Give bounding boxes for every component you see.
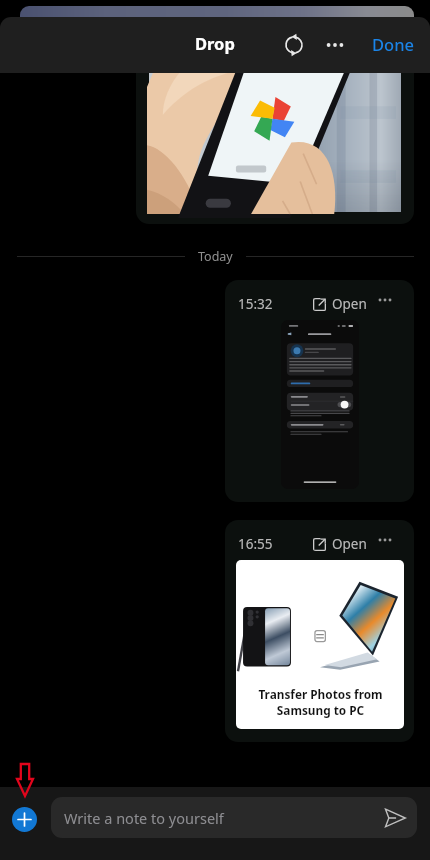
button[interactable]: Open — [311, 293, 369, 315]
button[interactable]: 16:55 — [225, 520, 414, 742]
button[interactable]: More — [374, 529, 396, 551]
staticText: Write a note to yourself — [64, 808, 224, 828]
button[interactable]: 15:32 — [225, 280, 414, 502]
staticText: Today — [198, 248, 233, 265]
button[interactable]: More — [374, 289, 396, 311]
staticText: Open — [332, 295, 367, 313]
button[interactable]: Write a note to yourself — [51, 797, 417, 838]
staticText: Open — [332, 535, 367, 553]
button[interactable]: Done — [366, 27, 420, 61]
staticText: Done — [372, 33, 414, 55]
button[interactable]: More options — [322, 32, 348, 58]
staticText: 15:32 — [238, 295, 273, 313]
button[interactable]: Add — [12, 807, 37, 832]
button[interactable]: Open — [311, 533, 369, 555]
staticText: 16:55 — [238, 535, 273, 553]
button[interactable]: Send — [384, 807, 406, 829]
staticText: Transfer Photos from Samsung to PC — [258, 686, 383, 719]
button[interactable] — [136, 48, 414, 224]
button[interactable]: Sync — [281, 32, 307, 58]
staticText: Drop — [195, 32, 235, 54]
